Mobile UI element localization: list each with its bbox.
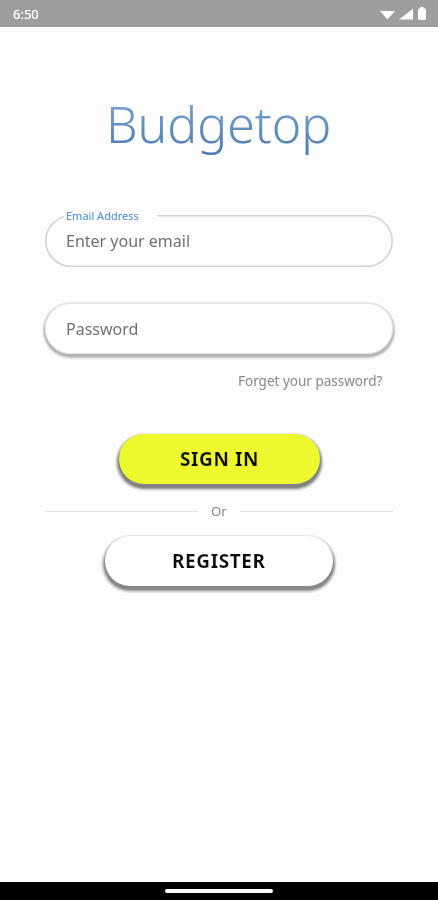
other: Home gesture bar: [0, 882, 438, 900]
staticText: Enter your email: [66, 230, 191, 252]
staticText: Email Address: [66, 208, 139, 223]
staticText: SIGN IN: [180, 446, 260, 472]
button[interactable]: SIGN IN: [119, 434, 320, 484]
button[interactable]: Password: [45, 303, 393, 354]
staticText: Or: [211, 502, 227, 520]
staticText: REGISTER: [172, 548, 266, 574]
staticText: Forget your password?: [238, 372, 383, 390]
staticText: Password: [66, 318, 139, 340]
staticText: 6:50: [13, 5, 39, 23]
staticText: Budgetop: [106, 90, 332, 158]
button[interactable]: REGISTER: [105, 536, 333, 586]
button[interactable]: Forget your password?: [234, 368, 387, 394]
button[interactable]: Enter your email: [45, 215, 393, 267]
